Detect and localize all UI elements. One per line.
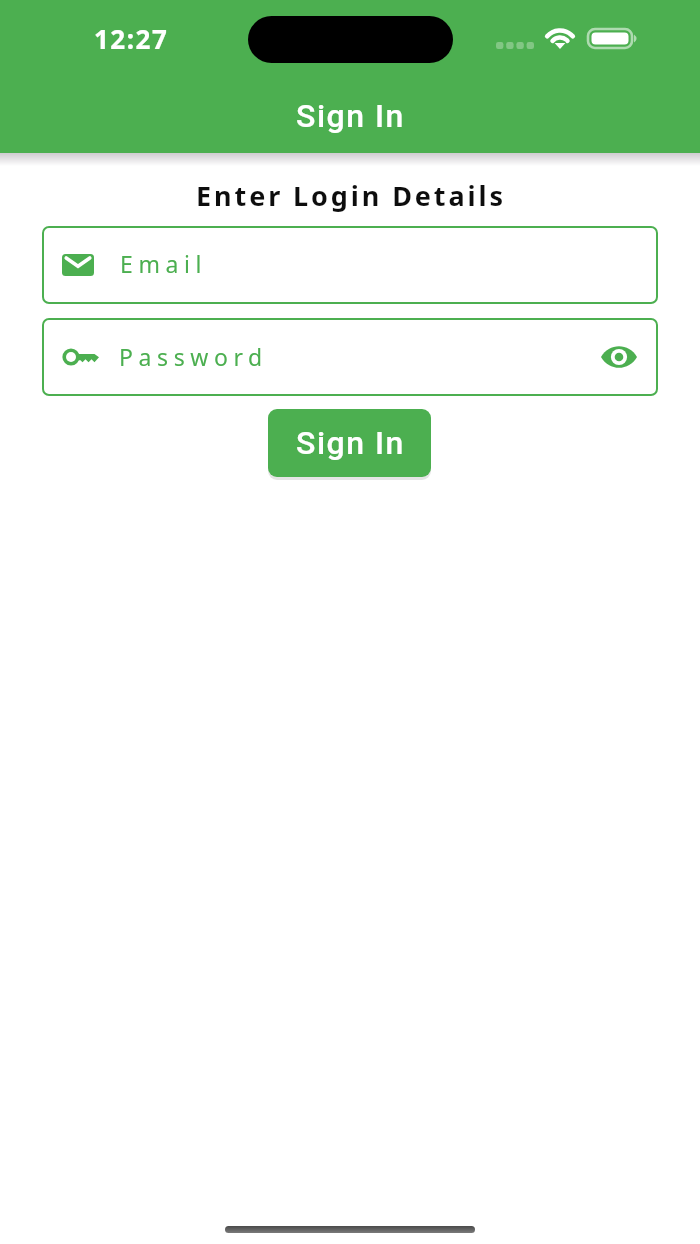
button[interactable]: Show password [596, 334, 642, 380]
button[interactable]: Email [42, 226, 658, 304]
staticText: Password [119, 341, 268, 372]
staticText: Sign In [296, 97, 405, 135]
staticText: Sign In [296, 424, 405, 462]
staticText: Email [120, 248, 208, 279]
button[interactable]: Sign In [268, 409, 431, 477]
staticText: Enter Login Details [1, 177, 700, 214]
button[interactable]: Password [42, 318, 658, 396]
staticText: 12:27 [94, 21, 169, 56]
